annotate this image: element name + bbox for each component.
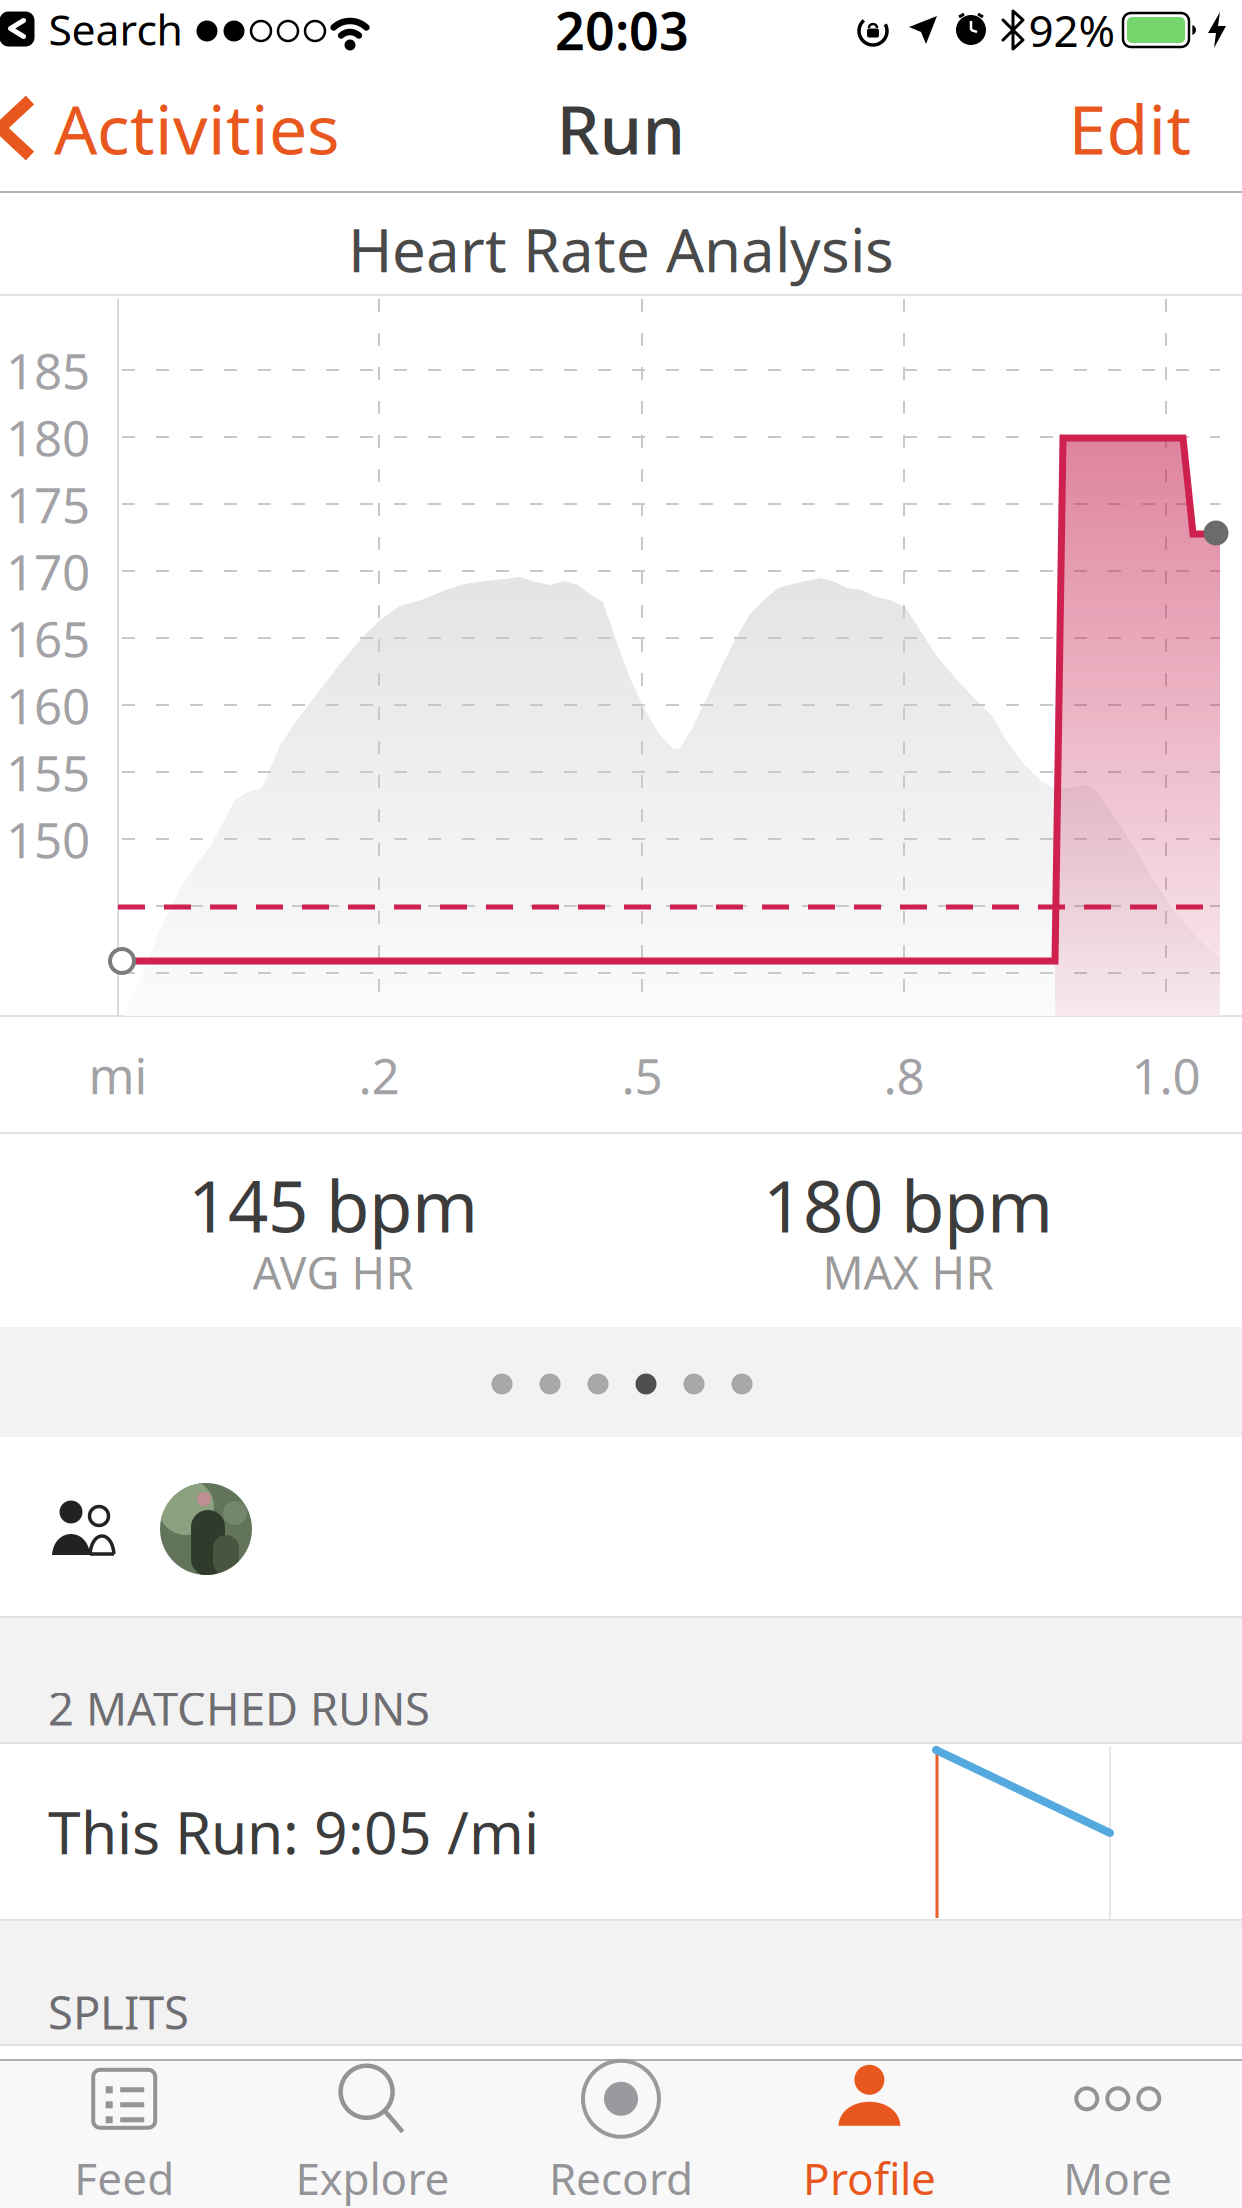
staticText: 165: [6, 605, 90, 671]
button[interactable]: This Run: 9:05 /mi: [0, 1744, 1242, 1919]
staticText: 185: [6, 337, 90, 403]
staticText: Run: [556, 83, 685, 173]
staticText: 180 bpm: [763, 1158, 1053, 1252]
button[interactable]: Athlete profile photo: [160, 1483, 252, 1575]
staticText: 92%: [1028, 1, 1115, 59]
staticText: mi: [88, 1042, 147, 1108]
staticText: 145 bpm: [188, 1158, 478, 1252]
staticText: MAX HR: [822, 1242, 993, 1302]
staticText: .5: [621, 1042, 662, 1108]
staticText: AVG HR: [252, 1242, 413, 1302]
button[interactable]: Profile: [745, 2061, 994, 2207]
button[interactable]: Feed: [0, 2061, 248, 2207]
button[interactable]: Tag friends: [45, 1495, 125, 1565]
staticText: Heart Rate Analysis: [348, 209, 894, 289]
staticText: 150: [6, 806, 90, 872]
staticText: 2 MATCHED RUNS: [48, 1678, 430, 1738]
staticText: 170: [6, 538, 90, 604]
staticText: .8: [883, 1042, 924, 1108]
staticText: .2: [358, 1042, 399, 1108]
staticText: More: [1063, 2149, 1172, 2207]
staticText: Search: [48, 1, 182, 57]
staticText: Edit: [1068, 83, 1191, 173]
staticText: SPLITS: [48, 1982, 189, 2042]
button[interactable]: More: [994, 2061, 1242, 2207]
staticText: Profile: [803, 2149, 936, 2207]
staticText: Record: [549, 2149, 693, 2207]
button[interactable]: Edit: [1068, 83, 1191, 173]
staticText: 1.0: [1131, 1042, 1200, 1108]
button[interactable]: Back to Activities: [0, 83, 340, 173]
staticText: This Run: 9:05 /mi: [48, 1792, 539, 1870]
staticText: Activities: [54, 83, 340, 173]
staticText: 20:03: [555, 0, 689, 65]
staticText: 155: [6, 739, 90, 805]
staticText: Explore: [296, 2149, 450, 2207]
staticText: 160: [6, 672, 90, 738]
button[interactable]: Record: [497, 2061, 745, 2207]
staticText: 175: [6, 471, 90, 537]
staticText: 180: [6, 404, 90, 470]
button[interactable]: Explore: [248, 2061, 497, 2207]
button[interactable]: Back to Search: [0, 1, 182, 57]
staticText: Feed: [74, 2149, 174, 2207]
